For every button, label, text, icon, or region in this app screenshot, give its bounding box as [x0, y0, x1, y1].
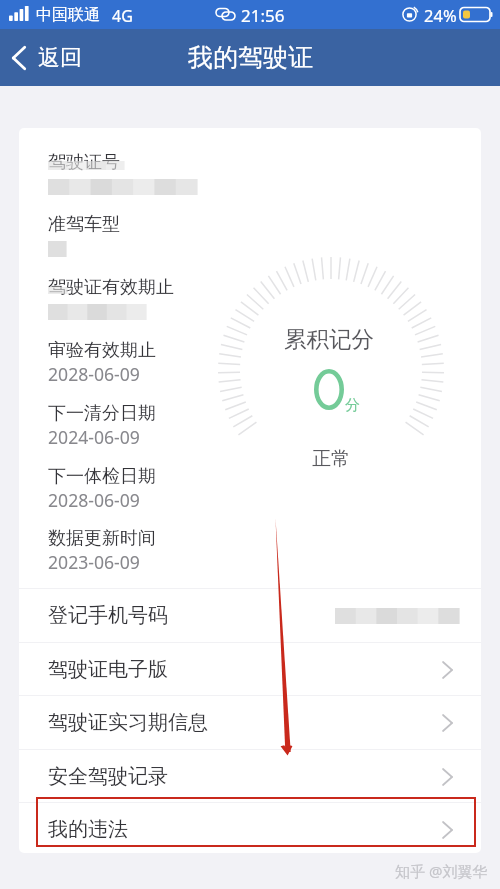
button[interactable]: 驾驶证电子版 [19, 643, 481, 696]
staticText: 我的驾驶证 [188, 42, 313, 73]
staticText: 2028-06-09 [48, 362, 140, 386]
staticText: 2023-06-09 [48, 550, 140, 574]
staticText: 准驾车型 [48, 213, 120, 236]
staticText: 分 [345, 396, 360, 415]
button[interactable]: 我的违法 [19, 803, 481, 853]
staticText: 下一体检日期 [48, 465, 156, 488]
button[interactable]: 返回 Back [0, 36, 96, 80]
staticText: 24% [424, 4, 457, 26]
staticText: 下一清分日期 [48, 402, 156, 425]
button[interactable]: 安全驾驶记录 [19, 750, 481, 803]
staticText: 正常 [312, 447, 350, 471]
staticText: 累积记分 [284, 325, 374, 353]
staticText: 驾驶证号 [48, 151, 120, 174]
staticText: 登记手机号码 [48, 603, 168, 628]
staticText: 2024-06-09 [48, 425, 140, 449]
staticText: 知乎 @刘翼华 [395, 861, 488, 881]
staticText: 21:56 [241, 4, 285, 27]
staticText: 我的违法 [48, 817, 128, 842]
staticText: 安全驾驶记录 [48, 764, 168, 789]
staticText: 驾驶证有效期止 [48, 276, 174, 299]
staticText: 4G [112, 5, 133, 27]
staticText: 驾驶证实习期信息 [48, 710, 208, 735]
staticText: 审验有效期止 [48, 339, 156, 362]
staticText: 2028-06-09 [48, 488, 140, 512]
staticText: 数据更新时间 [48, 527, 156, 550]
button[interactable]: 驾驶证实习期信息 [19, 696, 481, 749]
staticText: 返回 [38, 44, 82, 72]
staticText: 中国联通 [36, 5, 100, 25]
staticText: 驾驶证电子版 [48, 657, 168, 682]
button[interactable]: 登记手机号码 [19, 589, 481, 642]
